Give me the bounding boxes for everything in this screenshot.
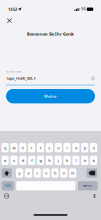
staticText: l (75, 158, 76, 163)
staticText: d (22, 158, 24, 163)
staticText: a (4, 158, 6, 163)
staticText: Weiter (83, 184, 92, 187)
button[interactable]: Weiter (6, 89, 95, 103)
staticText: i (66, 145, 67, 150)
button[interactable]: u (55, 143, 62, 152)
staticText: u (57, 145, 59, 150)
staticText: o (75, 145, 77, 150)
staticText: m (71, 170, 75, 176)
staticText: g (39, 158, 41, 163)
staticText: 5G (81, 7, 85, 11)
staticText: s (13, 158, 15, 163)
button[interactable]: o (72, 143, 79, 152)
button[interactable]: Delete (87, 168, 97, 178)
button[interactable]: Weiter (78, 181, 98, 190)
staticText: r (31, 145, 33, 150)
staticText: Weiter (44, 93, 57, 99)
button[interactable]: y (16, 168, 23, 178)
staticText: q (4, 145, 6, 150)
staticText: x (27, 170, 29, 176)
staticText: Tapo_H500_80CF (6, 76, 36, 81)
staticText: k (66, 158, 68, 163)
button[interactable]: Shift (1, 168, 12, 178)
button[interactable]: r (28, 143, 35, 152)
button[interactable]: s (10, 156, 17, 165)
staticText: h (48, 158, 50, 163)
button[interactable]: l (72, 156, 79, 165)
button[interactable]: e (19, 143, 26, 152)
button[interactable]: g (37, 156, 44, 165)
staticText: p (84, 145, 86, 150)
staticText: j (58, 158, 59, 163)
staticText: n (63, 170, 65, 176)
staticText: Benennen Sie Ihr Gerät (27, 31, 74, 36)
button[interactable]: h (46, 156, 53, 165)
button[interactable]: ü (90, 143, 97, 152)
button[interactable]: x (25, 168, 32, 178)
button[interactable]: z (46, 143, 53, 152)
staticText: z (48, 145, 50, 150)
button[interactable]: m (69, 168, 76, 178)
button[interactable]: Close (4, 15, 15, 26)
staticText: b (54, 170, 56, 176)
staticText: w (12, 145, 15, 150)
button[interactable]: i (63, 143, 71, 152)
button[interactable]: Clear text (91, 76, 95, 80)
button[interactable]: p (81, 143, 88, 152)
button[interactable]: q (1, 143, 9, 152)
staticText: ö (84, 158, 86, 163)
staticText: Gerätename (6, 70, 22, 73)
staticText: ä (93, 158, 95, 163)
staticText: ü (93, 145, 95, 150)
staticText: 123 (5, 184, 11, 187)
button[interactable]: t (37, 143, 44, 152)
button[interactable]: k (63, 156, 71, 165)
staticText: y (19, 170, 21, 176)
button[interactable]: n (60, 168, 67, 178)
button[interactable]: j (55, 156, 62, 165)
button[interactable]: c (34, 168, 41, 178)
button[interactable]: ö (81, 156, 88, 165)
staticText: e (22, 145, 24, 150)
staticText: f (31, 158, 32, 163)
staticText: v (45, 170, 47, 176)
button[interactable]: Dictation (89, 192, 99, 199)
button[interactable]: 123 (2, 181, 14, 190)
button[interactable]: Next keyboard (1, 192, 11, 199)
staticText: t (40, 145, 41, 150)
button[interactable]: f (28, 156, 35, 165)
button[interactable]: a (1, 156, 9, 165)
button[interactable]: ä (90, 156, 97, 165)
button[interactable]: b (51, 168, 59, 178)
button[interactable]: d (19, 156, 26, 165)
button[interactable]: w (10, 143, 17, 152)
button[interactable]: v (42, 168, 50, 178)
staticText: c (36, 170, 38, 176)
staticText: 13:52 (8, 6, 17, 12)
